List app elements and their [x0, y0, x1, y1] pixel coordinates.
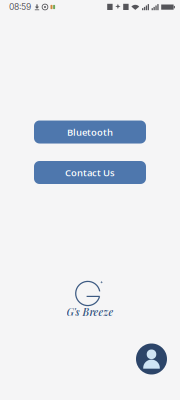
button[interactable]: Contact Us — [34, 161, 146, 184]
staticText: Contact Us — [65, 166, 115, 179]
staticText: Bluetooth — [67, 126, 113, 138]
button[interactable]: Bluetooth — [34, 120, 146, 143]
button[interactable]: Profile — [136, 343, 180, 374]
staticText: G's Breeze — [66, 305, 113, 318]
staticText: 08:59 — [9, 2, 31, 12]
